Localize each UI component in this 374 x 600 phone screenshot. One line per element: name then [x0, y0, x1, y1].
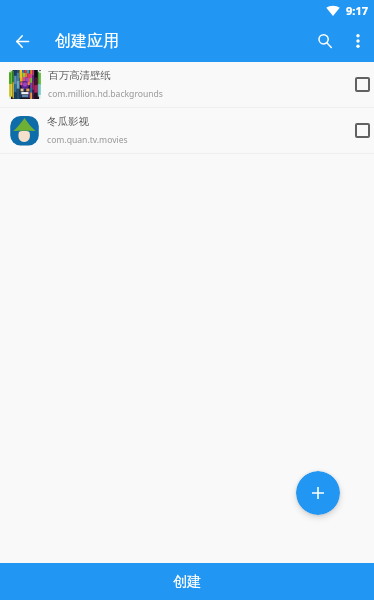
button[interactable]: Add [296, 471, 340, 515]
button[interactable]: Search [309, 20, 341, 62]
button[interactable]: 创建 [0, 563, 374, 600]
button[interactable]: 冬瓜影视 [0, 108, 374, 153]
staticText: 9:17 [346, 3, 368, 18]
staticText: com.quan.tv.movies [47, 134, 128, 146]
button[interactable]: Back [0, 20, 45, 62]
button[interactable]: Select app [350, 108, 374, 153]
button[interactable]: More options [341, 20, 374, 62]
staticText: 百万高清壁纸 [48, 69, 111, 82]
staticText: 冬瓜影视 [47, 115, 89, 128]
staticText: 创建应用 [55, 31, 119, 51]
staticText: 创建 [173, 573, 201, 591]
button[interactable]: Select app [350, 62, 374, 107]
staticText: com.million.hd.backgrounds [48, 88, 163, 100]
button[interactable]: 百万高清壁纸 [0, 62, 374, 107]
